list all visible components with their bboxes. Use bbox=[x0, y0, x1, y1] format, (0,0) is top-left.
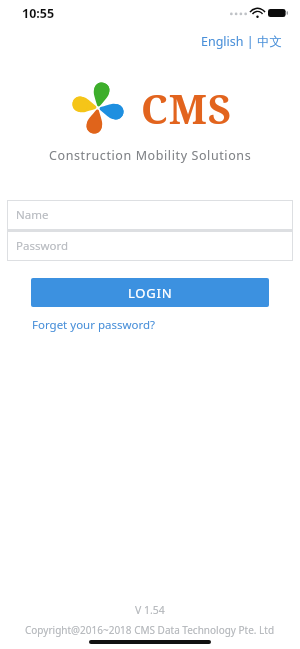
staticText: Forget your password? bbox=[32, 317, 156, 333]
staticText: 10:55 bbox=[22, 5, 55, 22]
staticText: English | 中文 bbox=[201, 33, 282, 50]
button[interactable]: LOGIN bbox=[31, 278, 269, 307]
staticText: LOGIN bbox=[128, 284, 173, 302]
button[interactable]: Password bbox=[7, 231, 293, 261]
staticText: Copyright@2016~2018 CMS Data Technology … bbox=[25, 623, 275, 637]
button[interactable]: Forget your password? bbox=[31, 314, 157, 336]
staticText: Construction Mobility Solutions bbox=[49, 147, 252, 164]
button[interactable]: Name bbox=[7, 200, 293, 230]
staticText: CMS bbox=[141, 81, 232, 135]
staticText: V 1.54 bbox=[135, 603, 165, 617]
button[interactable]: English | 中文 bbox=[197, 30, 286, 53]
staticText: Name bbox=[16, 207, 49, 223]
staticText: Password bbox=[16, 238, 69, 254]
